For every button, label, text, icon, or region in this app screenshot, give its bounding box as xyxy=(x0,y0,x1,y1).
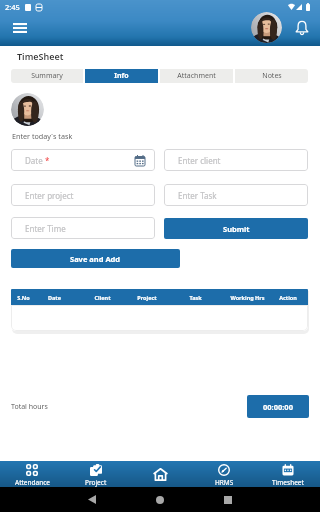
staticText: Client xyxy=(94,294,111,301)
button[interactable]: Project xyxy=(64,461,128,487)
button[interactable]: Home xyxy=(145,487,175,512)
button[interactable]: Attendance xyxy=(0,461,64,487)
staticText: Date xyxy=(48,294,61,301)
button[interactable]: Open navigation menu xyxy=(6,16,34,40)
button[interactable]: Info xyxy=(85,69,158,83)
staticText: Date xyxy=(25,155,43,166)
staticText: Action xyxy=(279,294,297,301)
staticText: Save and Add xyxy=(70,254,121,264)
button[interactable]: Date xyxy=(25,149,145,171)
staticText: Enter project xyxy=(25,190,74,201)
staticText: 2:45 xyxy=(5,2,20,12)
staticText: Project xyxy=(85,478,107,487)
staticText: Task xyxy=(189,294,202,301)
staticText: Summary xyxy=(31,71,63,81)
staticText: Attendance xyxy=(15,478,50,487)
button[interactable]: Save and Add xyxy=(11,249,180,268)
button[interactable]: 00:00:00 xyxy=(247,395,309,418)
staticText: TimeSheet xyxy=(17,50,64,62)
staticText: * xyxy=(43,155,50,166)
button[interactable]: HRMS xyxy=(192,461,256,487)
button[interactable]: Back xyxy=(77,487,107,512)
staticText: Enter Task xyxy=(178,190,217,201)
button[interactable]: Notes xyxy=(235,69,308,83)
staticText: Notes xyxy=(262,71,282,81)
button[interactable]: Attachment xyxy=(160,69,233,83)
button[interactable]: Timesheet xyxy=(256,461,320,487)
staticText: 00:00:00 xyxy=(263,402,293,412)
button[interactable]: Home xyxy=(128,461,192,487)
staticText: Enter today`s task xyxy=(12,131,73,141)
button[interactable]: Enter Task xyxy=(178,184,298,206)
button[interactable]: Enter project xyxy=(25,184,145,206)
staticText: S.No xyxy=(17,294,30,301)
button[interactable]: Enter Time xyxy=(25,217,145,239)
staticText: Submit xyxy=(223,224,250,234)
staticText: Project xyxy=(137,294,157,301)
staticText: HRMS xyxy=(215,478,234,487)
staticText: Working Hrs xyxy=(230,294,265,301)
button[interactable]: Profile xyxy=(251,12,282,43)
button[interactable]: Recent apps xyxy=(213,487,243,512)
button[interactable]: Enter client xyxy=(178,149,298,171)
button[interactable]: Notifications xyxy=(290,16,314,40)
staticText: Info xyxy=(114,71,129,81)
staticText: Total hours xyxy=(11,402,48,412)
staticText: Attachment xyxy=(177,71,216,81)
staticText: Enter client xyxy=(178,155,221,166)
button[interactable]: Summary xyxy=(11,69,83,83)
button[interactable]: Submit xyxy=(164,218,308,239)
staticText: Enter Time xyxy=(25,223,66,234)
staticText: Timesheet xyxy=(272,478,304,487)
